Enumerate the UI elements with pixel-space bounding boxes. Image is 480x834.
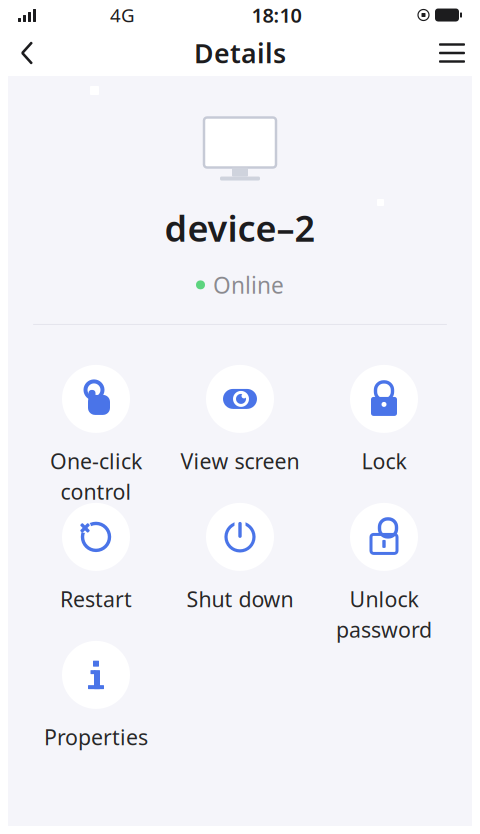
staticText: One-click	[50, 447, 142, 475]
button[interactable]: Properties	[24, 641, 168, 767]
staticText: Online	[213, 270, 284, 300]
button[interactable]: Lock	[312, 365, 456, 491]
staticText: View screen	[180, 447, 299, 475]
button[interactable]: Restart	[24, 503, 168, 629]
staticText: Shut down	[186, 585, 293, 613]
button[interactable]: One-click	[24, 365, 168, 491]
staticText: Restart	[60, 585, 132, 613]
staticText: Unlock	[349, 585, 418, 613]
button[interactable]: Menu	[424, 30, 480, 76]
button[interactable]: View screen	[168, 365, 312, 491]
staticText: device–2	[164, 204, 315, 252]
button[interactable]: Back	[0, 30, 54, 76]
staticText: password	[336, 615, 432, 643]
staticText: 4G	[110, 3, 135, 27]
staticText: control	[60, 477, 131, 505]
staticText: Details	[194, 35, 286, 71]
staticText: Properties	[44, 723, 148, 751]
button[interactable]: Shut down	[168, 503, 312, 629]
staticText: Lock	[361, 447, 406, 475]
staticText: 18:10	[251, 2, 301, 28]
button[interactable]: Unlock	[312, 503, 456, 629]
